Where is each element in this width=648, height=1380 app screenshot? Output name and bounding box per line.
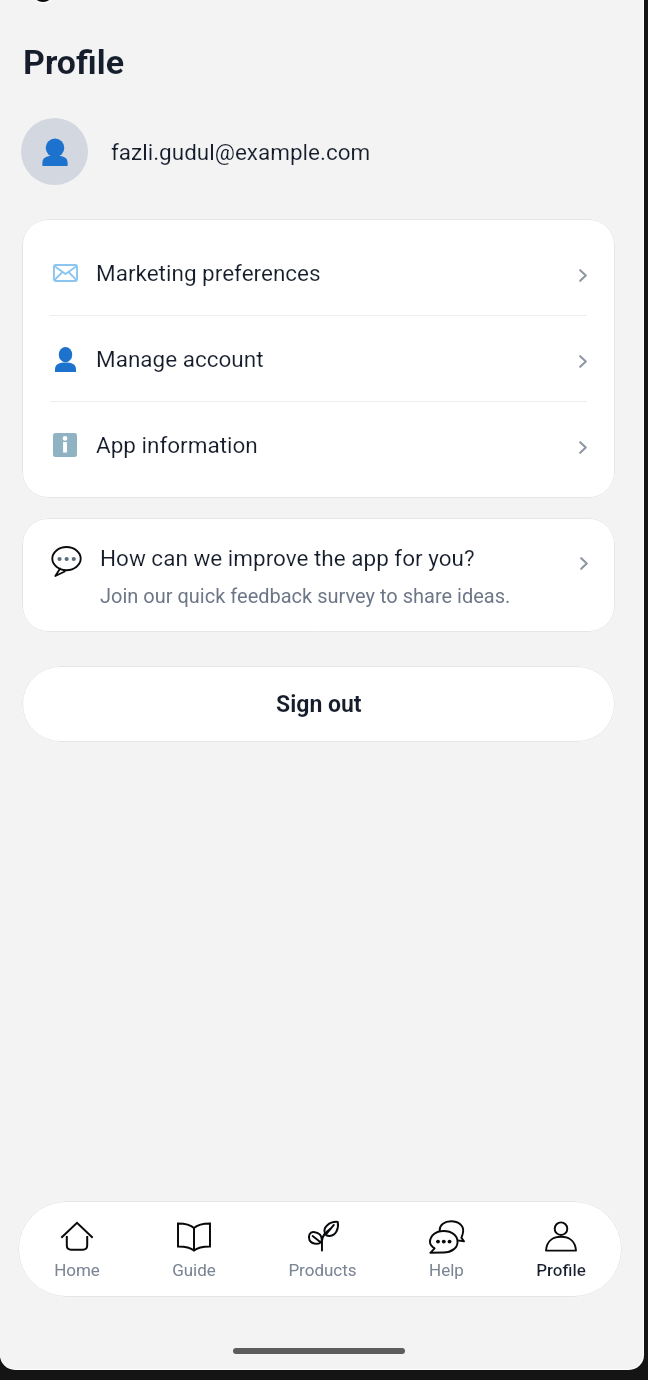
- staticText: App information: [96, 432, 258, 458]
- staticText: Profile: [23, 42, 125, 82]
- button[interactable]: Products: [288, 1201, 357, 1297]
- staticText: fazli.gudul@example.com: [111, 139, 371, 165]
- button[interactable]: Profile: [536, 1201, 586, 1297]
- staticText: Marketing preferences: [96, 260, 321, 286]
- staticText: Sign out: [276, 691, 362, 718]
- staticText: Manage account: [96, 346, 264, 372]
- button[interactable]: App information: [22, 402, 615, 487]
- staticText: How can we improve the app for you?: [100, 545, 475, 571]
- button[interactable]: Marketing preferences: [22, 230, 615, 315]
- staticText: Products: [288, 1260, 357, 1280]
- button[interactable]: Sign out: [22, 666, 615, 742]
- button[interactable]: How can we improve the app for you?: [22, 518, 615, 632]
- button[interactable]: Home: [54, 1201, 100, 1297]
- staticText: Home: [54, 1260, 100, 1280]
- staticText: Profile: [536, 1260, 586, 1280]
- button[interactable]: Guide: [172, 1201, 216, 1297]
- button[interactable]: Help: [429, 1201, 464, 1297]
- button[interactable]: Manage account: [22, 316, 615, 401]
- staticText: Join our quick feedback survey to share …: [100, 584, 511, 607]
- other: Back: [30, 0, 56, 4]
- staticText: Help: [429, 1260, 464, 1280]
- staticText: Guide: [172, 1260, 216, 1280]
